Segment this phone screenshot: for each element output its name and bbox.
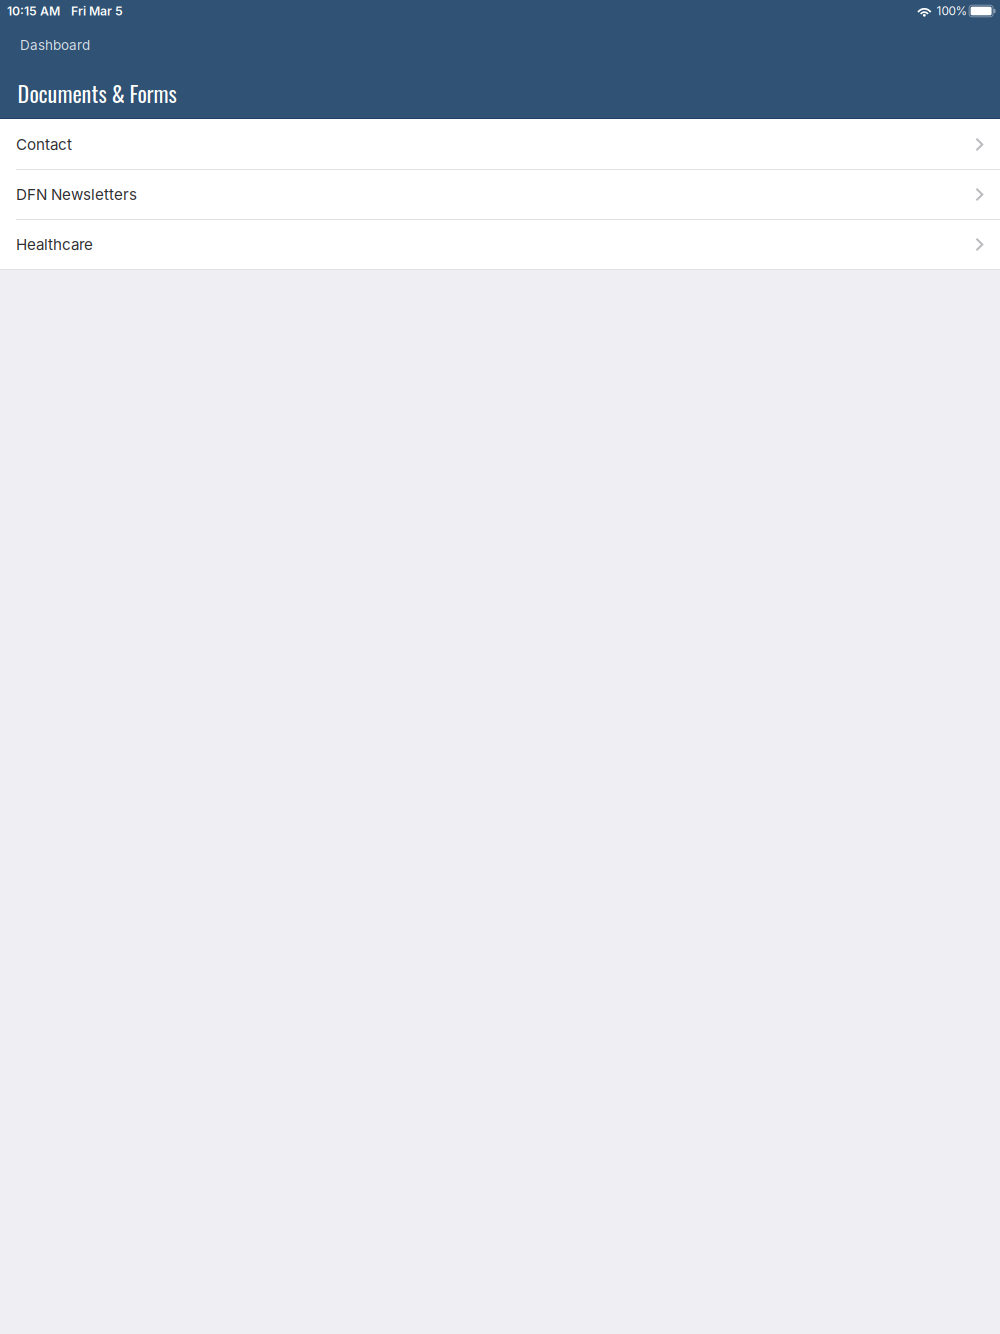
staticText: DFN Newsletters <box>16 185 137 204</box>
button[interactable]: Contact <box>0 120 1000 170</box>
staticText: Fri Mar 5 <box>71 4 123 18</box>
button[interactable]: Healthcare <box>0 220 1000 270</box>
button[interactable]: Back to Dashboard <box>0 22 1000 68</box>
staticText: Documents & Forms <box>17 77 176 109</box>
staticText: 100% <box>937 4 968 18</box>
staticText: Healthcare <box>16 235 93 254</box>
staticText: Dashboard <box>20 37 90 53</box>
staticText: Contact <box>16 135 72 154</box>
staticText: 10:15 AM <box>7 4 60 18</box>
button[interactable]: DFN Newsletters <box>0 170 1000 220</box>
